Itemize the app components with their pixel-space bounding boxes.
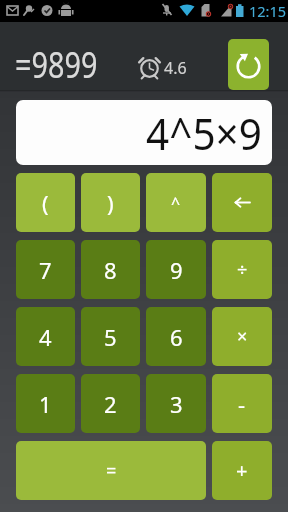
button[interactable] (212, 173, 272, 232)
staticText: ^ (171, 192, 181, 214)
button[interactable]: 5 (81, 307, 140, 366)
staticText: 2 (104, 389, 117, 419)
button[interactable]: × (212, 307, 272, 366)
staticText: = (106, 458, 117, 483)
staticText: - (238, 389, 246, 419)
button[interactable]: 3 (146, 374, 206, 433)
button[interactable]: 4 (16, 307, 75, 366)
button[interactable]: + (212, 441, 272, 500)
staticText: ) (107, 188, 114, 218)
staticText: =9899 (15, 40, 97, 89)
button[interactable]: ( (16, 173, 75, 232)
staticText: 7 (39, 255, 52, 285)
staticText: 8 (104, 255, 117, 285)
button[interactable]: 2 (81, 374, 140, 433)
button[interactable] (228, 39, 269, 90)
button[interactable]: 1 (16, 374, 75, 433)
staticText: 4.6 (164, 57, 187, 79)
staticText: ( (42, 188, 49, 218)
staticText: 1 (39, 389, 52, 419)
staticText: × (237, 324, 248, 349)
button[interactable]: 9 (146, 240, 206, 299)
staticText: 4 (39, 322, 52, 352)
button[interactable]: 4^5×9 (16, 100, 272, 165)
staticText: 5 (104, 322, 117, 352)
button[interactable]: 6 (146, 307, 206, 366)
staticText: 3 (170, 389, 183, 419)
button[interactable]: ) (81, 173, 140, 232)
staticText: + (236, 457, 248, 484)
staticText: 9 (170, 255, 183, 285)
button[interactable]: 8 (81, 240, 140, 299)
staticText: ÷ (237, 257, 248, 282)
button[interactable]: - (212, 374, 272, 433)
staticText: 4^5×9 (146, 103, 262, 163)
button[interactable]: = (16, 441, 206, 500)
button[interactable]: ÷ (212, 240, 272, 299)
button[interactable]: 7 (16, 240, 75, 299)
staticText: 6 (170, 322, 183, 352)
button[interactable]: ^ (146, 173, 206, 232)
staticText: 12:15 (249, 1, 287, 21)
